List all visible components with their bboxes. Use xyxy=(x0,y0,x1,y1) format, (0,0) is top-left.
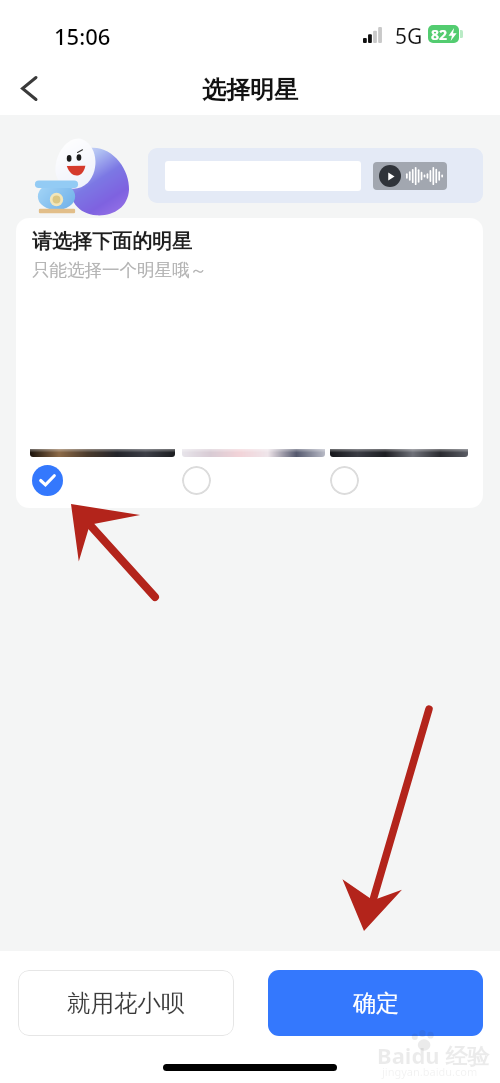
button[interactable]: Back xyxy=(4,64,52,112)
button[interactable]: 就用花小呗 xyxy=(18,970,234,1036)
button[interactable]: Play voice message xyxy=(148,148,483,203)
staticText: 15:06 xyxy=(54,21,111,51)
button[interactable]: 确定 xyxy=(268,970,483,1036)
staticText: 请选择下面的明星 xyxy=(32,229,192,254)
staticText: 5G xyxy=(395,22,423,51)
button[interactable]: Select star xyxy=(182,466,211,495)
button[interactable]: Selected star xyxy=(32,465,63,496)
staticText: Baidu 经验 xyxy=(377,1040,490,1070)
button[interactable]: Select star xyxy=(330,466,359,495)
staticText: 就用花小呗 xyxy=(67,988,185,1018)
staticText: 确定 xyxy=(353,989,399,1018)
staticText: 只能选择一个明星哦～ xyxy=(32,259,207,281)
staticText: 选择明星 xyxy=(202,75,298,105)
staticText: jingyan.baidu.com xyxy=(382,1064,478,1079)
staticText: 82 xyxy=(431,25,448,43)
